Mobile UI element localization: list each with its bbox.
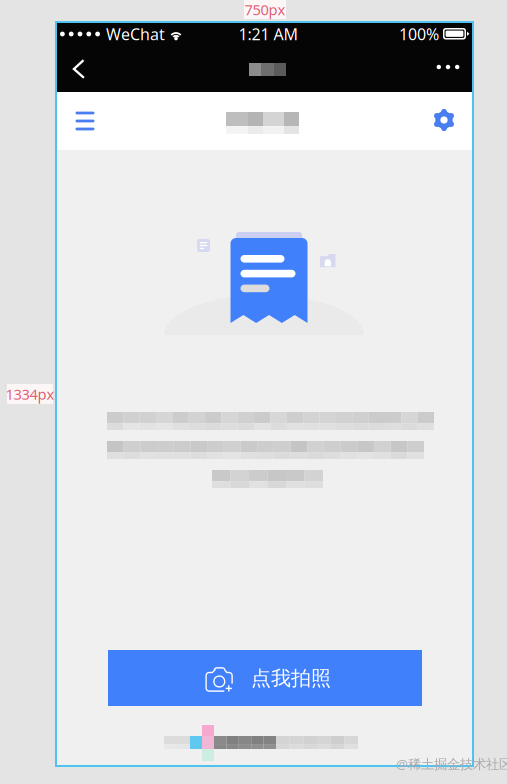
staticText: @稀土掘金技术社区: [396, 755, 507, 773]
staticText: 1334px: [5, 384, 54, 404]
button[interactable]: More options: [424, 45, 472, 89]
staticText: 750px: [244, 0, 285, 19]
staticText: 100%: [399, 23, 439, 45]
button[interactable]: 点我拍照: [108, 650, 422, 706]
button[interactable]: Settings: [420, 96, 468, 144]
staticText: 1:21 AM: [238, 23, 298, 45]
staticText: 点我拍照: [251, 666, 331, 691]
staticText: WeChat: [106, 23, 165, 45]
button[interactable]: Menu: [61, 97, 109, 145]
button[interactable]: Back: [57, 47, 101, 91]
